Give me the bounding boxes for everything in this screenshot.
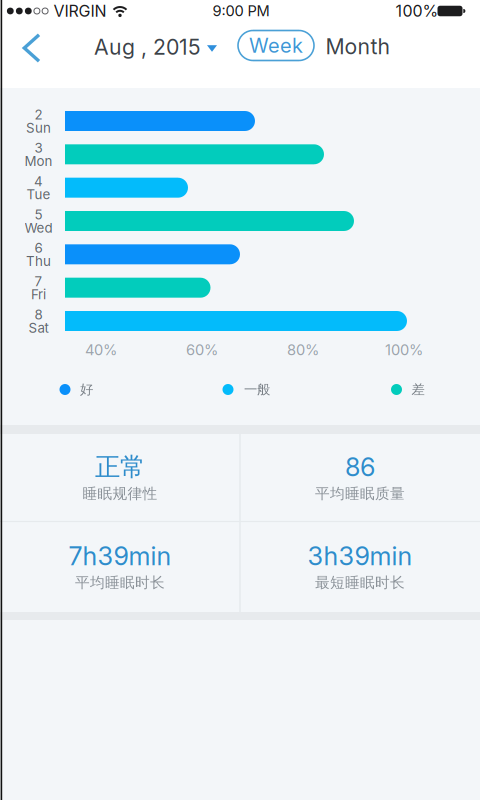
staticText: 平均睡眠质量 bbox=[315, 484, 405, 502]
staticText: Month bbox=[325, 34, 390, 59]
staticText: 5 bbox=[34, 207, 42, 222]
staticText: 8 bbox=[34, 307, 42, 322]
staticText: 最短睡眠时长 bbox=[315, 573, 405, 591]
staticText: 86 bbox=[345, 452, 375, 482]
staticText: VIRGIN bbox=[53, 2, 106, 20]
staticText: 100% bbox=[395, 2, 438, 20]
staticText: 4 bbox=[34, 173, 43, 189]
staticText: Week bbox=[249, 34, 303, 57]
staticText: Fri bbox=[31, 287, 46, 302]
staticText: 60% bbox=[186, 341, 218, 359]
staticText: 好 bbox=[80, 381, 93, 398]
button[interactable]: Week bbox=[238, 30, 314, 60]
button[interactable] bbox=[21, 33, 41, 63]
staticText: 平均睡眠时长 bbox=[75, 573, 165, 591]
staticText: Sun bbox=[26, 120, 51, 136]
staticText: 7h39min bbox=[68, 541, 171, 571]
button[interactable]: Month bbox=[325, 34, 390, 59]
staticText: 100% bbox=[385, 341, 423, 359]
staticText: 80% bbox=[287, 341, 319, 359]
staticText: Thu bbox=[26, 253, 51, 269]
staticText: 6 bbox=[34, 240, 42, 256]
staticText: Tue bbox=[26, 187, 50, 202]
staticText: 40% bbox=[85, 341, 117, 359]
staticText: 7 bbox=[34, 273, 42, 289]
staticText: 9:00 PM bbox=[212, 2, 269, 20]
button[interactable]: Aug , 2015 bbox=[94, 32, 222, 62]
staticText: 正常 bbox=[95, 451, 145, 482]
staticText: Aug , 2015 bbox=[94, 34, 201, 60]
staticText: 3h39min bbox=[307, 541, 412, 571]
staticText: 差 bbox=[411, 381, 424, 398]
staticText: Wed bbox=[24, 220, 52, 236]
staticText: 2 bbox=[34, 107, 42, 122]
staticText: 睡眠规律性 bbox=[82, 484, 157, 502]
staticText: 3 bbox=[34, 140, 42, 156]
staticText: Mon bbox=[24, 153, 52, 169]
staticText: 一般 bbox=[244, 381, 270, 398]
staticText: Sat bbox=[28, 320, 48, 336]
